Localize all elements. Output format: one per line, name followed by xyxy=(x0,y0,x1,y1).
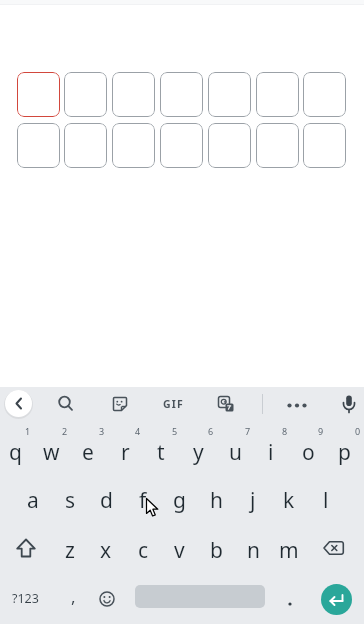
button[interactable]: s xyxy=(52,477,88,523)
staticText: w xyxy=(43,438,60,467)
staticText: t xyxy=(157,438,165,467)
button[interactable] xyxy=(303,72,346,117)
button[interactable] xyxy=(17,72,60,117)
button[interactable]: a xyxy=(15,477,51,523)
staticText: n xyxy=(247,536,260,565)
button[interactable]: t xyxy=(143,429,179,475)
staticText: 8 xyxy=(282,425,288,437)
button[interactable] xyxy=(337,392,361,416)
button[interactable]: x xyxy=(88,527,124,573)
button[interactable] xyxy=(256,72,299,117)
staticText: 6 xyxy=(208,425,214,437)
button[interactable] xyxy=(108,392,132,416)
button[interactable] xyxy=(160,72,203,117)
staticText: 1 xyxy=(25,425,31,437)
button[interactable]: f xyxy=(125,477,161,523)
button[interactable]: j xyxy=(235,477,271,523)
staticText: j xyxy=(250,486,256,515)
staticText: i xyxy=(268,438,274,467)
button[interactable]: p xyxy=(326,429,362,475)
staticText: 4 xyxy=(135,425,141,437)
staticText: 0 xyxy=(355,425,361,437)
button[interactable] xyxy=(208,123,251,168)
button[interactable] xyxy=(208,72,251,117)
staticText: g xyxy=(173,486,186,515)
button[interactable] xyxy=(303,123,346,168)
staticText: d xyxy=(100,486,113,515)
button[interactable]: ?123 xyxy=(3,583,47,613)
button[interactable]: d xyxy=(88,477,124,523)
button[interactable] xyxy=(278,589,302,613)
staticText: b xyxy=(210,536,223,565)
button[interactable]: o xyxy=(290,429,326,475)
button[interactable] xyxy=(5,390,32,417)
staticText: 9 xyxy=(318,425,324,437)
button[interactable] xyxy=(112,72,155,117)
staticText: 2 xyxy=(62,425,68,437)
staticText: m xyxy=(279,536,299,565)
button[interactable]: l xyxy=(308,477,344,523)
staticText: c xyxy=(138,536,149,565)
button[interactable] xyxy=(256,123,299,168)
button[interactable]: v xyxy=(161,527,197,573)
button[interactable]: z xyxy=(52,527,88,573)
button[interactable]: n xyxy=(235,527,271,573)
staticText: z xyxy=(65,536,75,565)
button[interactable]: e xyxy=(70,429,106,475)
staticText: q xyxy=(9,438,22,467)
staticText: r xyxy=(121,438,130,467)
button[interactable]: GIF xyxy=(152,392,196,416)
button[interactable] xyxy=(54,392,78,416)
staticText: a xyxy=(27,486,39,515)
button[interactable]: i xyxy=(253,429,289,475)
button[interactable] xyxy=(285,393,309,417)
button[interactable]: y xyxy=(180,429,216,475)
button[interactable] xyxy=(95,587,119,611)
button[interactable]: w xyxy=(33,429,69,475)
staticText: l xyxy=(323,486,329,515)
button[interactable]: c xyxy=(125,527,161,573)
staticText: k xyxy=(283,486,295,515)
button[interactable] xyxy=(321,584,352,615)
button[interactable] xyxy=(64,123,107,168)
button[interactable] xyxy=(8,533,44,565)
staticText: 5 xyxy=(172,425,178,437)
staticText: x xyxy=(100,536,112,565)
button[interactable]: u xyxy=(217,429,253,475)
staticText: o xyxy=(302,438,315,467)
button[interactable]: h xyxy=(198,477,234,523)
button[interactable]: r xyxy=(107,429,143,475)
staticText: 3 xyxy=(99,425,105,437)
button[interactable] xyxy=(17,123,60,168)
staticText: , xyxy=(71,585,76,608)
staticText: GIF xyxy=(163,397,185,411)
staticText: v xyxy=(174,536,185,565)
button[interactable]: , xyxy=(61,581,85,611)
staticText: u xyxy=(229,438,242,467)
button[interactable]: q xyxy=(0,429,33,475)
button[interactable]: b xyxy=(198,527,234,573)
staticText: ?123 xyxy=(12,590,39,607)
staticText: y xyxy=(193,438,204,467)
staticText: 7 xyxy=(245,425,251,437)
button[interactable]: m xyxy=(271,527,307,573)
staticText: f xyxy=(139,486,147,515)
staticText: e xyxy=(82,438,94,467)
staticText: h xyxy=(210,486,223,515)
button[interactable] xyxy=(160,123,203,168)
button[interactable] xyxy=(214,392,238,416)
button[interactable]: k xyxy=(271,477,307,523)
button[interactable] xyxy=(112,123,155,168)
button[interactable] xyxy=(316,533,352,565)
button[interactable] xyxy=(64,72,107,117)
staticText: p xyxy=(338,438,351,467)
button[interactable]: g xyxy=(161,477,197,523)
staticText: s xyxy=(65,486,76,515)
